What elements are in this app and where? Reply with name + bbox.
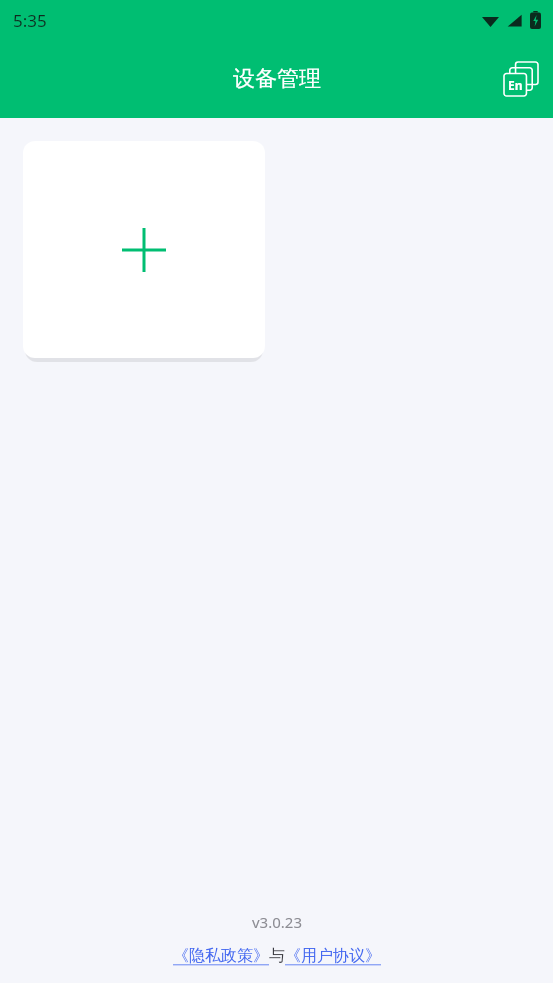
button[interactable]: 《用户协议》 [285,946,381,966]
staticText: 《隐私政策》 [173,946,269,966]
button[interactable]: Add device [23,141,265,358]
staticText: 《用户协议》 [285,946,381,966]
staticText: 5:35 [13,9,47,32]
staticText: 设备管理 [233,65,321,93]
staticText: 与 [269,946,285,966]
button[interactable]: 《隐私政策》 [173,946,269,966]
button[interactable]: Switch language to English [497,55,545,103]
staticText: v3.0.23 [252,912,302,932]
staticText: En [508,77,523,93]
